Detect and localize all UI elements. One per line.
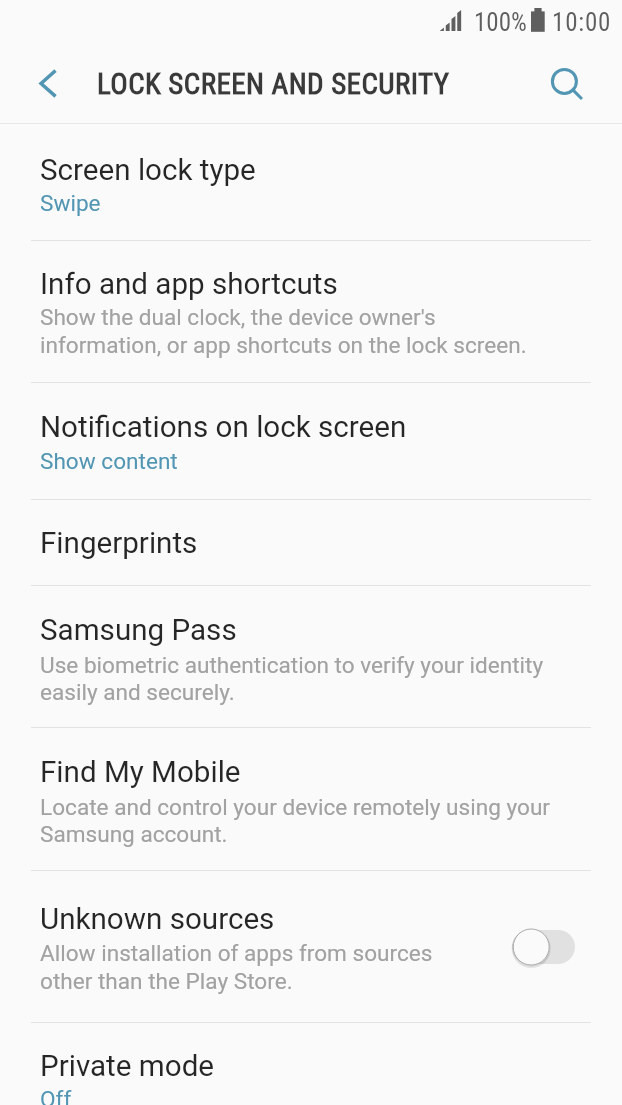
button[interactable]: Unknown sources: [0, 871, 622, 1022]
button[interactable]: Search: [539, 56, 597, 114]
staticText: Screen lock type: [40, 153, 256, 188]
staticText: 100%: [474, 8, 527, 37]
staticText: Find My Mobile: [40, 755, 241, 790]
staticText: Info and app shortcuts: [40, 267, 338, 302]
staticText: Show content: [40, 448, 178, 474]
staticText: Show the dual clock, the device owner's: [40, 304, 436, 330]
staticText: easily and securely.: [40, 679, 235, 705]
staticText: information, or app shortcuts on the loc…: [40, 332, 527, 358]
staticText: Unknown sources: [40, 902, 275, 937]
staticText: Use biometric authentication to verify y…: [40, 652, 544, 678]
button[interactable]: Find My Mobile: [0, 728, 622, 870]
staticText: Fingerprints: [40, 526, 198, 561]
staticText: Private mode: [40, 1049, 215, 1084]
staticText: Notifications on lock screen: [40, 410, 407, 445]
staticText: Swipe: [40, 190, 101, 216]
staticText: Allow installation of apps from sources: [40, 940, 433, 966]
staticText: Locate and control your device remotely …: [40, 794, 551, 820]
button[interactable]: Notifications on lock screen: [0, 383, 622, 499]
staticText: 10:00: [552, 8, 612, 37]
button[interactable]: Private mode: [0, 1023, 622, 1105]
button[interactable]: Screen lock type: [0, 124, 622, 240]
button[interactable]: Unknown sources, off: [506, 923, 582, 971]
staticText: other than the Play Store.: [40, 968, 293, 994]
button[interactable]: Samsung Pass: [0, 586, 622, 727]
button[interactable]: Fingerprints: [0, 500, 622, 585]
staticText: Off: [40, 1086, 72, 1105]
staticText: Samsung account.: [40, 821, 228, 847]
staticText: LOCK SCREEN AND SECURITY: [97, 67, 450, 101]
staticText: Samsung Pass: [40, 613, 237, 648]
button[interactable]: Info and app shortcuts: [0, 241, 622, 382]
button[interactable]: Navigate up: [16, 56, 78, 111]
